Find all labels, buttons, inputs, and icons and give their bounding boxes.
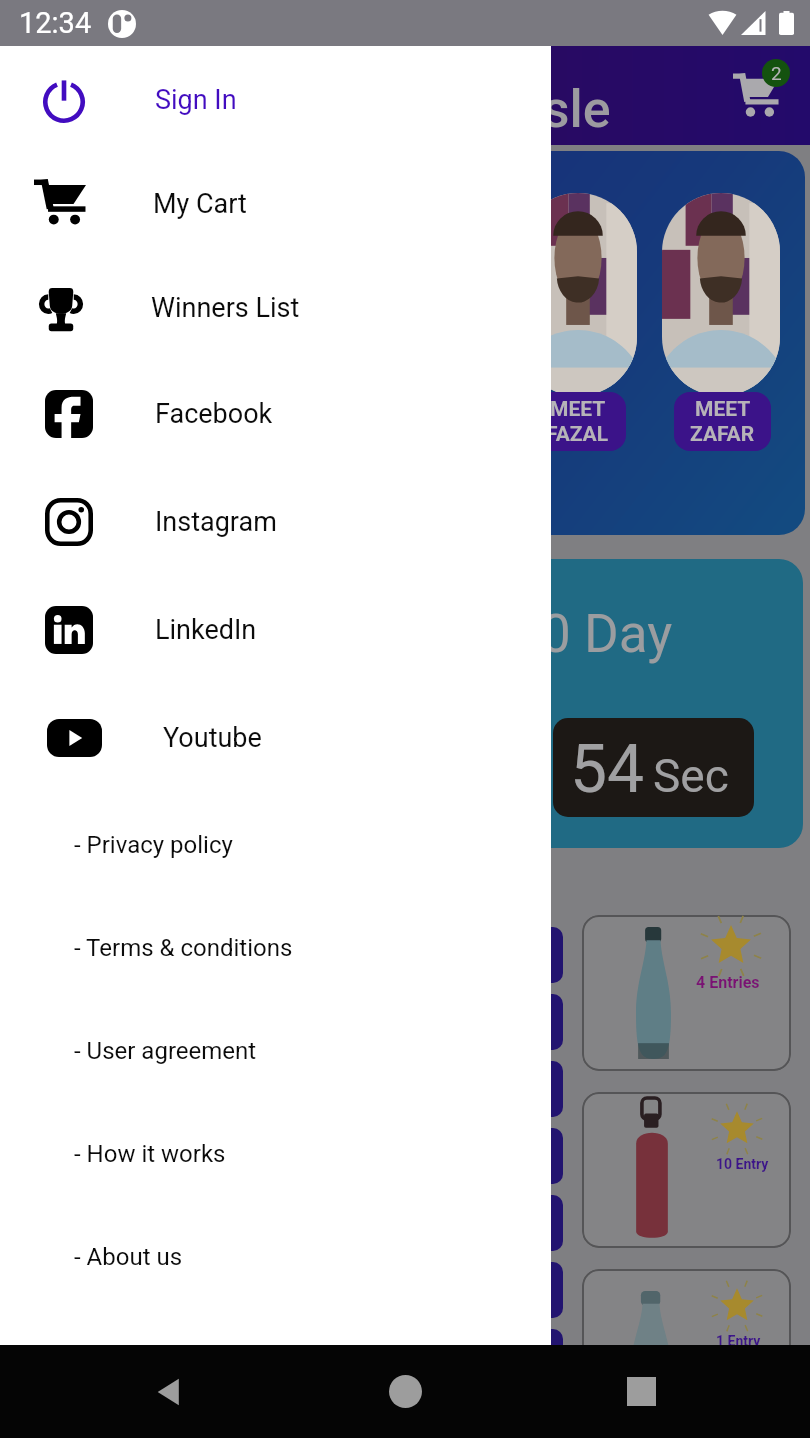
staticText: 4 Entries — [696, 973, 760, 992]
staticText: - Privacy policy — [74, 831, 233, 859]
button[interactable]: Cart — [733, 72, 779, 122]
staticText: MEET — [550, 397, 606, 422]
button[interactable]: MEET — [529, 392, 626, 451]
staticText: 1 Entry — [716, 1333, 761, 1349]
button[interactable]: Back — [148, 1370, 192, 1414]
staticText: Sign In — [155, 84, 237, 116]
button[interactable]: - User agreement — [0, 1021, 551, 1081]
button[interactable]: Sign In — [0, 54, 551, 146]
staticText: Sec — [653, 749, 729, 803]
staticText: 54 — [570, 731, 645, 808]
button[interactable] — [534, 1195, 563, 1251]
staticText: FAZAL — [546, 422, 609, 447]
button[interactable] — [534, 1128, 563, 1184]
staticText: My Cart — [153, 188, 247, 220]
staticText: - How it works — [74, 1140, 226, 1168]
staticText: - About us — [74, 1243, 183, 1271]
button[interactable] — [534, 1329, 563, 1385]
staticText: 12:34 — [19, 6, 92, 40]
button[interactable] — [534, 1061, 563, 1117]
staticText: Youtube — [163, 722, 262, 754]
button[interactable]: - How it works — [0, 1124, 551, 1184]
button[interactable]: - Terms & conditions — [0, 918, 551, 978]
button[interactable] — [534, 994, 563, 1050]
button[interactable]: Youtube — [0, 692, 551, 784]
button[interactable]: 1 Entry — [582, 1269, 791, 1425]
staticText: Instagram — [155, 506, 277, 538]
button[interactable]: 4 Entries — [582, 915, 791, 1071]
staticText: ZAFAR — [690, 422, 755, 447]
button[interactable]: MEET — [674, 392, 771, 451]
staticText: Facebook — [155, 398, 273, 430]
button[interactable]: - About us — [0, 1227, 551, 1287]
button[interactable]: My Cart — [0, 158, 551, 250]
staticText: 0 Day — [541, 603, 673, 665]
button[interactable]: Facebook — [0, 368, 551, 460]
staticText: LinkedIn — [155, 614, 257, 646]
staticText: Winners List — [151, 292, 300, 324]
staticText: 2 — [771, 62, 782, 84]
button[interactable]: 10 Entry — [582, 1092, 791, 1248]
staticText: MEET — [695, 397, 751, 422]
button[interactable]: Home — [389, 1375, 422, 1408]
button[interactable]: Instagram — [0, 476, 551, 568]
staticText: Hassle — [451, 79, 611, 140]
button[interactable]: LinkedIn — [0, 584, 551, 676]
button[interactable] — [534, 1262, 563, 1318]
staticText: 10 Entry — [716, 1156, 769, 1172]
staticText: - Terms & conditions — [74, 934, 293, 962]
button[interactable]: Winners List — [0, 262, 551, 354]
button[interactable]: - Privacy policy — [0, 815, 551, 875]
button[interactable] — [534, 927, 563, 983]
staticText: - User agreement — [74, 1037, 257, 1065]
